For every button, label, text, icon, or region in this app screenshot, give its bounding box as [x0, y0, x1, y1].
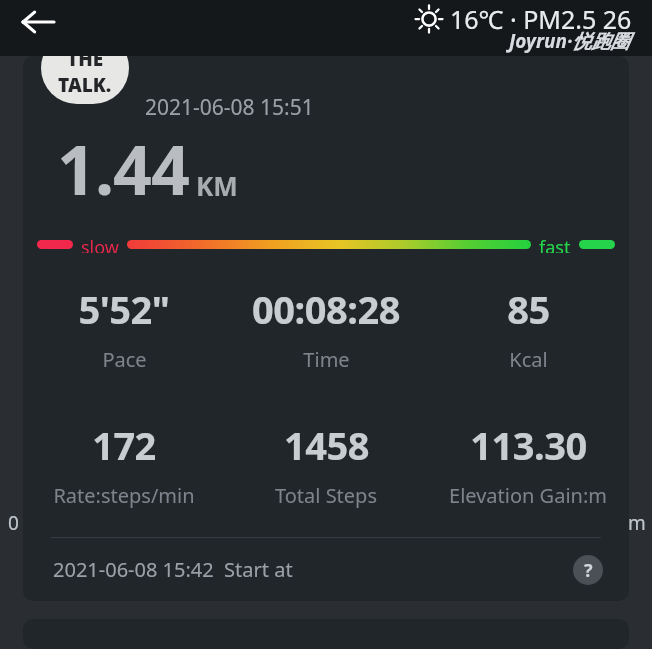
staticText: Rate:steps/min: [53, 482, 195, 509]
staticText: 113.30: [470, 419, 587, 471]
button[interactable]: 1458: [225, 419, 427, 509]
button[interactable]: THE: [23, 56, 629, 128]
button[interactable]: 00:08:28: [225, 283, 427, 373]
staticText: 0: [8, 510, 19, 536]
staticText: 1.44: [57, 122, 189, 215]
staticText: 00:08:28: [252, 283, 400, 335]
staticText: Joyrun·悦跑圈: [509, 28, 630, 54]
button[interactable]: 16℃ · PM2.5 26: [414, 2, 632, 36]
button[interactable]: Help: [573, 555, 603, 585]
staticText: 5'52": [78, 283, 170, 335]
staticText: KM: [196, 168, 238, 203]
staticText: ?: [584, 558, 593, 583]
staticText: slow: [81, 235, 119, 253]
staticText: 2021-06-08 15:51: [145, 93, 314, 122]
staticText: m: [628, 510, 646, 536]
staticText: 16℃ · PM2.5 26: [450, 2, 632, 36]
button[interactable]: Back: [10, 0, 66, 50]
staticText: THE: [67, 56, 104, 72]
staticText: 1458: [284, 419, 369, 471]
button[interactable]: 172: [23, 419, 225, 509]
staticText: Pace: [102, 346, 147, 373]
staticText: Total Steps: [275, 482, 377, 509]
staticText: 172: [92, 419, 156, 471]
staticText: 2021-06-08 15:42 Start at: [53, 556, 293, 583]
staticText: Time: [303, 346, 350, 373]
staticText: Elevation Gain:m: [449, 482, 607, 509]
staticText: fast: [539, 235, 571, 253]
staticText: TALK.: [58, 72, 112, 98]
button[interactable]: 5'52": [23, 283, 225, 373]
button[interactable]: 113.30: [427, 419, 629, 509]
button[interactable]: 85: [427, 283, 629, 373]
staticText: Kcal: [509, 346, 548, 373]
staticText: 85: [507, 283, 550, 335]
